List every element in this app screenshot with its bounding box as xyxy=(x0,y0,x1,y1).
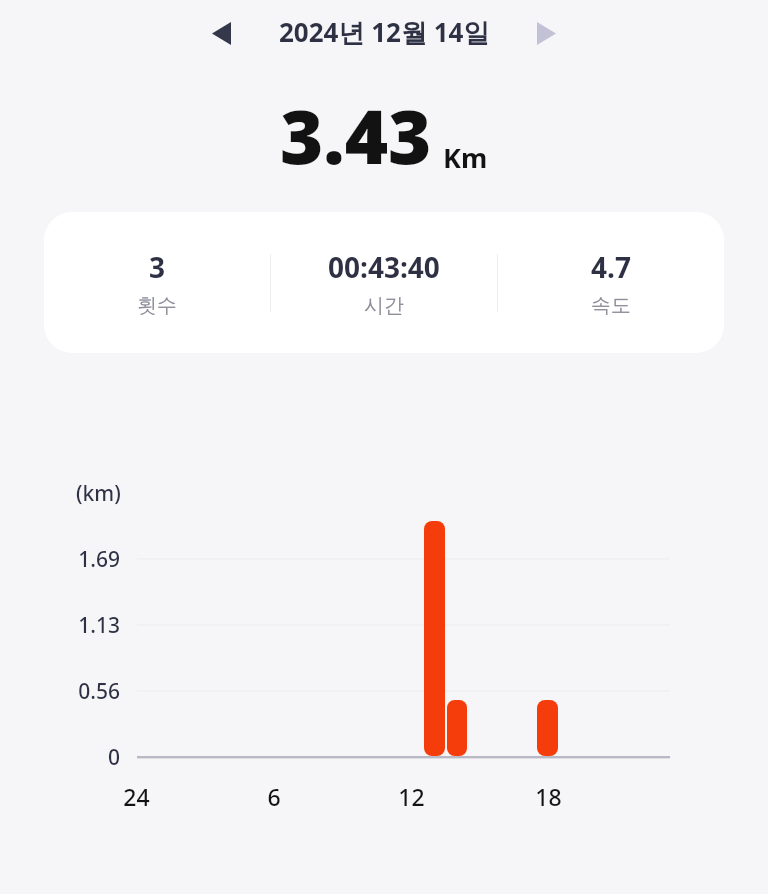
staticText: 6 xyxy=(267,781,281,812)
button[interactable]: 3 xyxy=(44,212,724,353)
staticText: 0.56 xyxy=(78,677,120,706)
button[interactable]: Previous day xyxy=(196,11,246,55)
staticText: (km) xyxy=(76,479,121,508)
staticText: 24 xyxy=(123,781,150,812)
button[interactable]: Next day xyxy=(521,11,571,55)
staticText: 1.69 xyxy=(78,545,120,574)
staticText: 0 xyxy=(107,743,120,772)
staticText: 18 xyxy=(535,781,562,812)
staticText: 3 xyxy=(149,248,166,286)
button[interactable]: 3 xyxy=(44,212,270,353)
staticText: 4.7 xyxy=(591,248,631,286)
staticText: 속도 xyxy=(591,293,631,318)
button[interactable]: 4.7 xyxy=(498,212,724,353)
staticText: 00:43:40 xyxy=(328,248,440,286)
staticText: 2024년 12월 14일 xyxy=(279,14,490,50)
staticText: 1.13 xyxy=(78,611,120,640)
staticText: 시간 xyxy=(364,293,404,318)
staticText: Km xyxy=(443,139,488,176)
staticText: 횟수 xyxy=(137,293,177,318)
staticText: 12 xyxy=(398,781,425,812)
staticText: 3.43 xyxy=(280,85,432,186)
button[interactable]: 00:43:40 xyxy=(271,212,497,353)
